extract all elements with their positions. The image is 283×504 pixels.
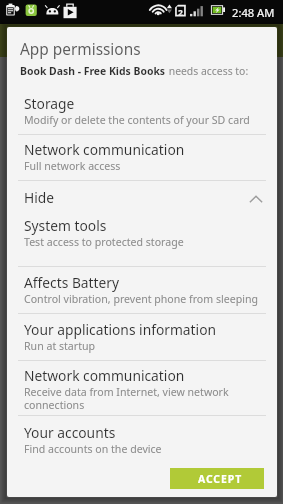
- staticText: Your applications information: [24, 320, 217, 339]
- staticText: Network communication: [24, 140, 185, 159]
- button[interactable]: ACCEPT: [170, 468, 264, 489]
- other: Collapse: [246, 189, 266, 209]
- staticText: Find accounts on the device: [24, 442, 162, 456]
- button[interactable]: Network communication: [18, 140, 266, 173]
- button[interactable]: System tools: [18, 216, 266, 249]
- staticText: Network communication: [24, 366, 185, 385]
- staticText: Control vibration, prevent phone from sl…: [24, 292, 258, 306]
- staticText: System tools: [24, 216, 107, 235]
- button[interactable]: Storage: [18, 94, 266, 127]
- staticText: 2:48 AM: [232, 5, 275, 20]
- staticText: needs access to:: [166, 64, 249, 78]
- staticText: Modify or delete the contents of your SD…: [24, 113, 250, 127]
- staticText: Hide: [24, 188, 55, 207]
- staticText: ACCEPT: [198, 472, 243, 486]
- button[interactable]: Your applications information: [18, 320, 266, 353]
- staticText: Book Dash - Free Kids Books: [20, 64, 166, 78]
- staticText: Your accounts: [24, 423, 116, 442]
- staticText: Run at startup: [24, 339, 96, 353]
- staticText: Receive data from Internet, view network…: [24, 385, 229, 412]
- staticText: App permissions: [20, 39, 141, 60]
- button[interactable]: Affects Battery: [18, 273, 266, 306]
- staticText: Affects Battery: [24, 273, 120, 292]
- staticText: 2: [178, 7, 183, 19]
- staticText: Storage: [24, 94, 75, 113]
- staticText: Test access to protected storage: [24, 235, 184, 249]
- button[interactable]: Your accounts: [18, 423, 266, 456]
- button[interactable]: Hide: [18, 188, 266, 208]
- button[interactable]: Network communication: [18, 366, 266, 412]
- staticText: Full network access: [24, 159, 121, 173]
